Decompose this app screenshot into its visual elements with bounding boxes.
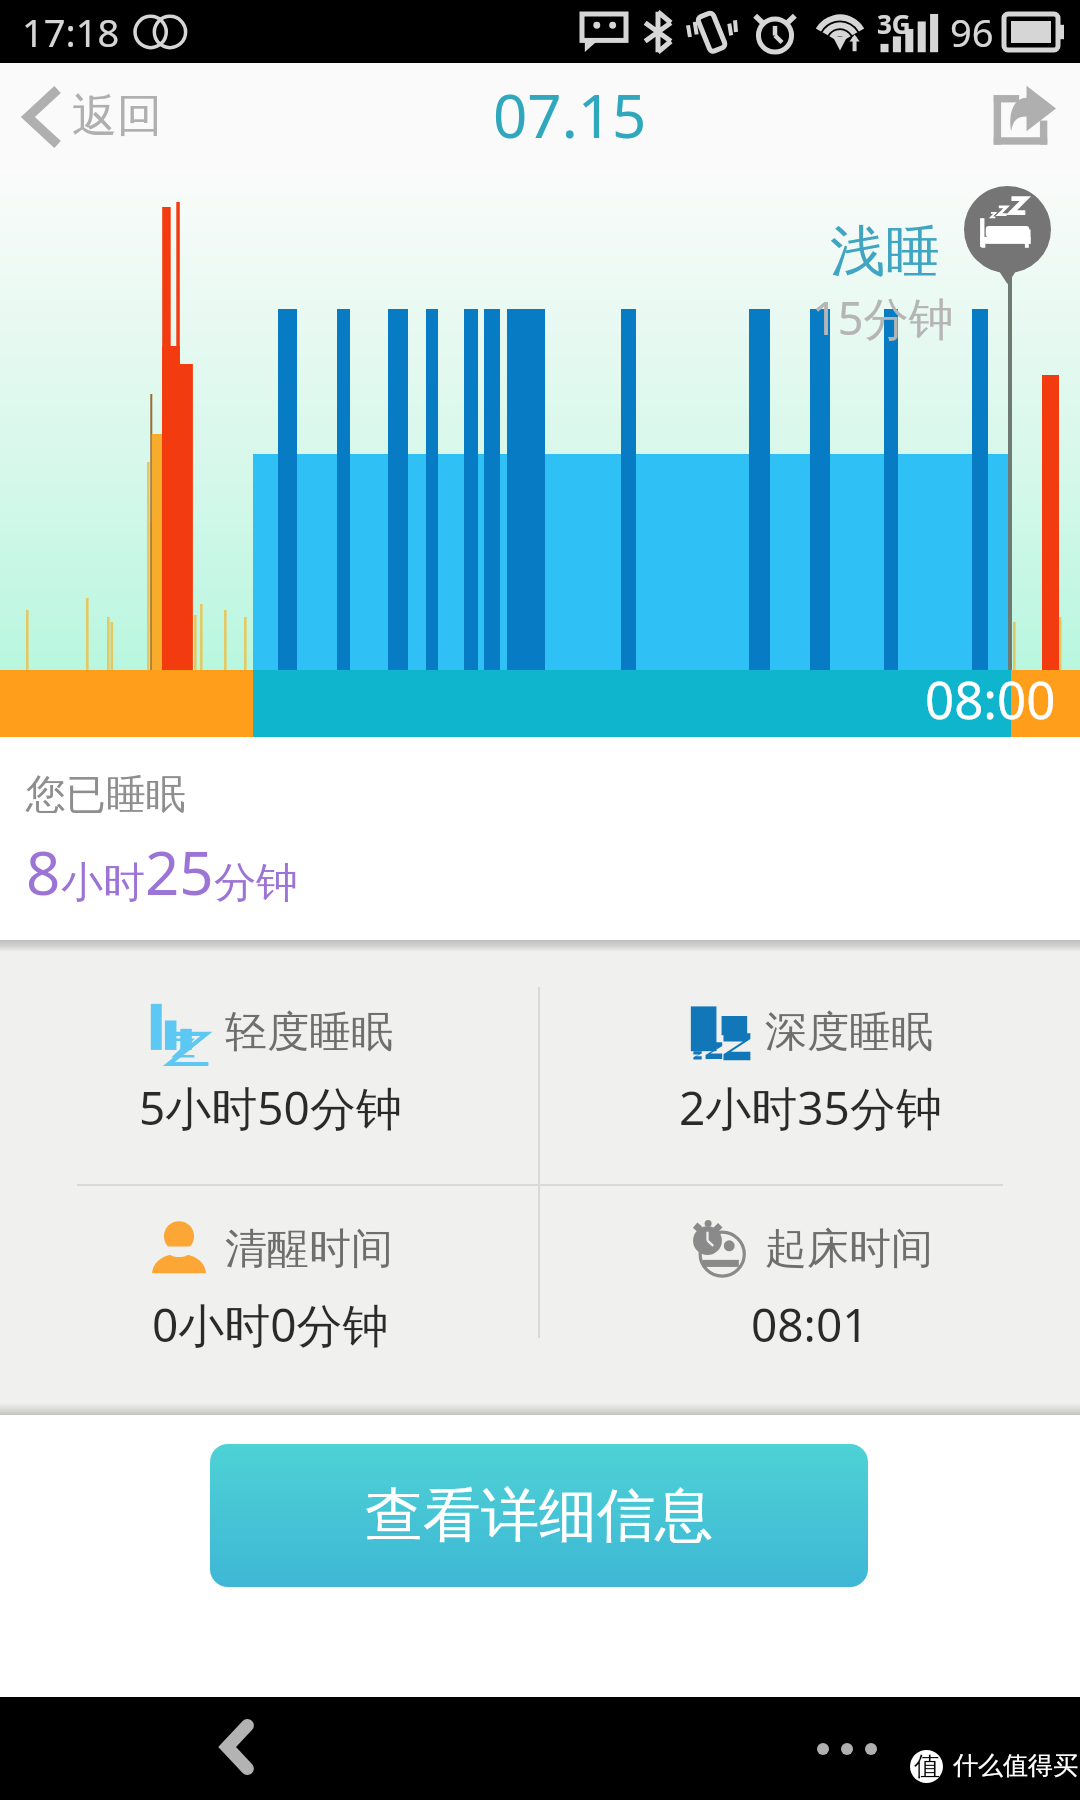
staticText: 值 — [914, 1750, 940, 1783]
staticText: 15分钟 — [812, 287, 954, 348]
button[interactable]: 返回 — [0, 72, 192, 161]
button[interactable]: Back — [204, 1703, 270, 1791]
staticText: 返回 — [72, 88, 162, 145]
staticText: 2小时35分钟 — [679, 1076, 942, 1139]
button[interactable]: 深度睡眠 — [540, 940, 1080, 1184]
button[interactable]: Share — [971, 69, 1080, 164]
staticText: 小时 — [61, 857, 145, 910]
staticText: 96 — [950, 6, 994, 58]
staticText: 您已睡眠 — [26, 769, 186, 819]
staticText: 浅睡 — [830, 217, 940, 286]
button[interactable]: 清醒时间 — [0, 1186, 540, 1415]
button[interactable]: 轻度睡眠 — [0, 940, 540, 1184]
button[interactable]: Light sleep marker — [964, 186, 1051, 284]
staticText: 3G — [877, 6, 911, 41]
button[interactable]: 查看详细信息 — [210, 1444, 868, 1587]
button[interactable]: 起床时间 — [540, 1186, 1080, 1415]
staticText: 什么值得买 — [953, 1750, 1078, 1781]
staticText: 轻度睡眠 — [225, 1006, 393, 1059]
staticText: 清醒时间 — [225, 1223, 393, 1276]
staticText: 07.15 — [493, 74, 647, 156]
staticText: 25 — [145, 831, 214, 913]
staticText: 5小时50分钟 — [139, 1076, 402, 1139]
staticText: 0小时0分钟 — [152, 1293, 389, 1356]
staticText: 起床时间 — [765, 1223, 933, 1276]
staticText: 分钟 — [214, 857, 298, 910]
button[interactable]: More options — [797, 1723, 897, 1775]
staticText: 17:18 — [22, 6, 120, 58]
staticText: 深度睡眠 — [765, 1006, 933, 1059]
staticText: 08:01 — [751, 1293, 869, 1356]
staticText: 8 — [26, 831, 61, 913]
staticText: 查看详细信息 — [365, 1479, 713, 1552]
staticText: 08:00 — [925, 664, 1056, 733]
